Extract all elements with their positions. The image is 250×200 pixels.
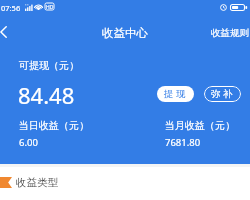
staticText: 弥补	[211, 88, 236, 100]
button[interactable]: 提现	[157, 86, 194, 102]
button[interactable]: 收益类型	[0, 174, 250, 190]
staticText: 当日收益（元）	[19, 119, 89, 132]
staticText: 7681.80	[165, 136, 201, 149]
staticText: 收益类型	[16, 176, 58, 189]
button[interactable]: 弥补	[204, 86, 241, 102]
button[interactable]: 收益规则	[208, 23, 250, 43]
staticText: 当月收益（元）	[165, 119, 235, 132]
staticText: 收益规则	[211, 27, 249, 39]
staticText: 07:56	[1, 3, 21, 13]
staticText: 6.00	[19, 136, 38, 149]
staticText: HD	[46, 4, 54, 11]
staticText: 提现	[164, 88, 189, 100]
staticText: 可提现（元）	[19, 59, 79, 72]
staticText: 收益中心	[102, 26, 148, 40]
button[interactable]: Back	[0, 19, 22, 45]
staticText: 84.48	[18, 80, 75, 110]
